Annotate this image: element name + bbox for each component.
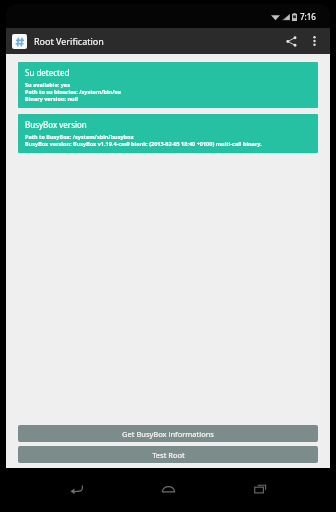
staticText: Test Root [152, 450, 185, 460]
staticText: Get BusyBox informations [122, 429, 214, 439]
button[interactable]: Back [54, 468, 98, 508]
staticText: Binary version: null [25, 95, 78, 102]
staticText: Su detected [25, 67, 70, 78]
staticText: Su available: yes [25, 81, 70, 88]
staticText: BusyBox version: BusyBox v1.19.4-cm9 bio… [25, 140, 262, 147]
button[interactable]: Test Root [18, 446, 318, 463]
staticText: BusyBox version [25, 119, 87, 130]
button[interactable]: Share [280, 30, 302, 52]
button[interactable]: More options [304, 31, 324, 51]
button[interactable]: Home [146, 468, 190, 508]
staticText: Path to BusyBox: /system/sbin/busybox [25, 133, 134, 140]
button[interactable]: Get BusyBox informations [18, 425, 318, 442]
staticText: 7:16 [300, 11, 316, 22]
button[interactable]: Su detected [18, 62, 318, 108]
staticText: Path to su binaries: /system/bin/su [25, 88, 121, 95]
button[interactable]: BusyBox version [18, 114, 318, 153]
button[interactable]: Recent apps [238, 468, 282, 508]
staticText: Root Verification [34, 35, 104, 47]
